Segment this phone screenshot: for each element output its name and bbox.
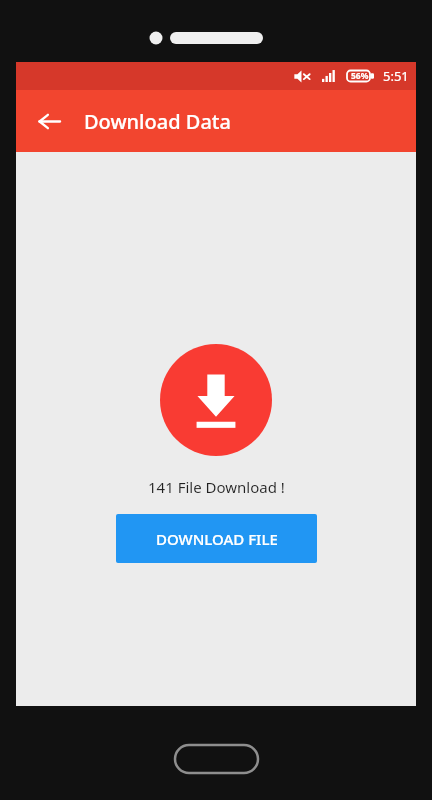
staticText: 5:51	[383, 67, 409, 85]
staticText: DOWNLOAD FILE	[156, 529, 278, 549]
button[interactable]: DOWNLOAD FILE	[116, 514, 317, 563]
button[interactable]: Back	[29, 101, 69, 141]
staticText: 141 File Download !	[148, 477, 285, 497]
button[interactable]: Download	[160, 344, 272, 456]
staticText: 56%	[351, 70, 369, 82]
staticText: Download Data	[84, 108, 231, 135]
